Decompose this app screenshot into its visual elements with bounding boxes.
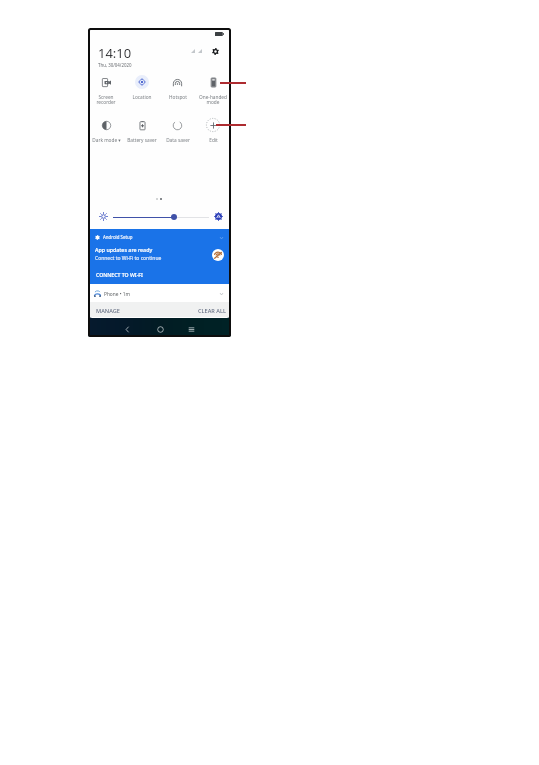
button[interactable]: Settings: [211, 47, 220, 56]
button[interactable]: Home: [153, 322, 167, 336]
staticText: Android Setup: [103, 234, 133, 240]
button[interactable]: CONNECT TO WI-FI: [96, 271, 143, 278]
staticText: Battery saver: [127, 137, 157, 143]
staticText: Phone • 1m: [104, 291, 130, 298]
button[interactable]: [124, 116, 160, 143]
staticText: CONNECT TO WI-FI: [96, 271, 143, 278]
button[interactable]: [195, 116, 231, 143]
staticText: Location: [132, 94, 152, 100]
button[interactable]: Back: [120, 322, 134, 336]
button[interactable]: [88, 116, 124, 143]
staticText: App updates are ready: [95, 246, 153, 253]
staticText: Screen recorder: [96, 94, 116, 106]
button[interactable]: [88, 73, 124, 100]
button[interactable]: Android Setup: [88, 229, 231, 284]
button[interactable]: [160, 73, 196, 100]
staticText: One-handed mode: [199, 94, 227, 106]
button[interactable]: CLEAR ALL: [198, 307, 226, 315]
staticText: CLEAR ALL: [198, 307, 226, 315]
button[interactable]: [124, 73, 160, 100]
button[interactable]: Recent apps: [184, 322, 198, 336]
staticText: Data saver: [166, 137, 190, 143]
staticText: MANAGE: [96, 307, 120, 315]
staticText: 14:10: [98, 44, 132, 62]
button[interactable]: MANAGE: [96, 307, 120, 315]
button[interactable]: [195, 73, 231, 100]
staticText: Hotspot: [169, 94, 187, 100]
staticText: Thu, 30/04/2020: [98, 62, 132, 68]
button[interactable]: Phone • 1m: [88, 285, 231, 302]
staticText: Dark mode ▾: [92, 137, 121, 143]
staticText: Edit: [209, 137, 218, 143]
button[interactable]: [160, 116, 196, 143]
staticText: Connect to Wi-Fi to continue: [95, 255, 162, 262]
